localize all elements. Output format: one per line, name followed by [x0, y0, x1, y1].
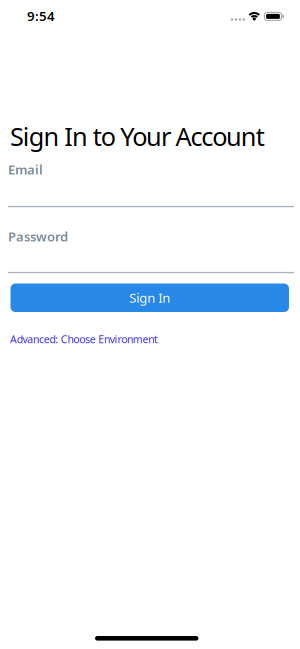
staticText: Sign In: [129, 289, 170, 307]
button[interactable]: Advanced: Choose Environment: [10, 332, 158, 346]
button[interactable]: Sign In: [10, 283, 289, 312]
staticText: Advanced: Choose Environment: [10, 332, 158, 346]
staticText: Password: [8, 228, 68, 245]
textField[interactable]: Email: [8, 160, 294, 207]
textField[interactable]: Password: [8, 228, 294, 273]
staticText: 9:54: [27, 7, 55, 25]
staticText: Sign In to Your Account: [10, 119, 265, 153]
staticText: Email: [8, 160, 43, 178]
